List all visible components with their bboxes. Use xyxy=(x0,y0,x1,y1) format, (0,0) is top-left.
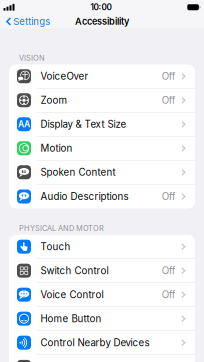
staticText: Display & Text Size xyxy=(40,118,126,130)
button[interactable]: Motion xyxy=(9,136,195,160)
staticText: Zoom xyxy=(40,94,67,106)
staticText: Off xyxy=(162,289,176,301)
staticText: Touch xyxy=(40,241,70,253)
button[interactable]: VoiceOver xyxy=(9,64,195,88)
staticText: VoiceOver xyxy=(40,70,88,82)
button[interactable]: Touch xyxy=(9,235,195,259)
staticText: VISION xyxy=(19,53,45,62)
button[interactable]: Switch Control xyxy=(9,259,195,283)
staticText: Off xyxy=(162,94,176,106)
staticText: Home Button xyxy=(40,313,101,325)
button[interactable]: Control Nearby Devices xyxy=(9,331,195,355)
staticText: Settings xyxy=(13,16,50,27)
staticText: Control Nearby Devices xyxy=(40,337,149,349)
staticText: Accessibility xyxy=(75,16,129,27)
staticText: Off xyxy=(162,191,176,202)
staticText: 10:00 xyxy=(90,2,111,12)
button[interactable]: Home Button xyxy=(9,307,195,331)
button[interactable]: Audio Descriptions xyxy=(9,184,195,208)
button[interactable]: AA xyxy=(9,112,195,136)
staticText: PHYSICAL AND MOTOR xyxy=(19,224,104,233)
button[interactable]: Spoken Content xyxy=(9,160,195,184)
staticText: Off xyxy=(162,70,176,82)
staticText: Motion xyxy=(40,142,72,154)
staticText: AA xyxy=(18,119,30,129)
staticText: Voice Control xyxy=(40,289,103,301)
button[interactable]: Voice Control xyxy=(9,283,195,307)
staticText: Audio Descriptions xyxy=(40,191,128,202)
button[interactable]: Zoom xyxy=(9,88,195,112)
staticText: Switch Control xyxy=(40,265,108,277)
staticText: Off xyxy=(162,265,176,277)
staticText: Spoken Content xyxy=(40,166,115,178)
button[interactable]: Settings xyxy=(1,14,55,28)
button[interactable]: Keyboards & Typing xyxy=(9,355,195,362)
